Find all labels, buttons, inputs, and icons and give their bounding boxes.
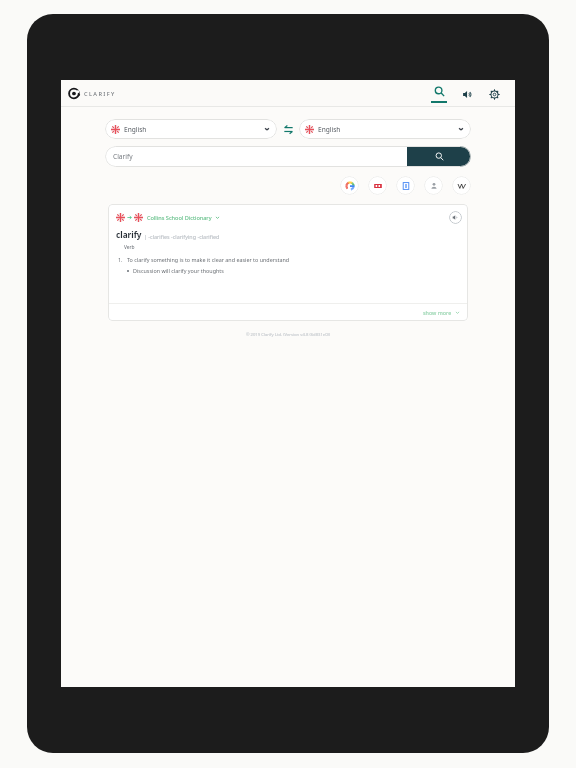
staticText: Verb	[124, 244, 135, 251]
staticText: 1.	[118, 256, 123, 263]
button[interactable]: Wikipedia	[452, 176, 471, 195]
button[interactable]: Collins dictionary	[368, 176, 387, 195]
button[interactable]: Google	[340, 176, 359, 195]
staticText: show more	[423, 309, 452, 316]
staticText: Discussion will clarify your thoughts	[133, 267, 224, 274]
staticText: CLARIFY	[84, 90, 116, 98]
button[interactable]: Sound	[456, 83, 478, 105]
staticText: English	[318, 125, 341, 134]
button[interactable]: Clarify	[105, 146, 407, 167]
button[interactable]: English	[299, 119, 471, 139]
staticText: To clarify something is to make it clear…	[127, 256, 290, 263]
staticText: clarify	[116, 229, 142, 240]
staticText: Collins School Dictionary	[147, 214, 212, 222]
staticText: | -clarifies -clarifying -clarified	[144, 233, 220, 240]
staticText: © 2019 Clarify Ltd. (Version v4.8 (6d831…	[61, 332, 515, 338]
button[interactable]: Images	[396, 176, 415, 195]
button[interactable]: Settings	[483, 83, 505, 105]
button[interactable]: show more	[415, 306, 468, 319]
button[interactable]: Pronounce	[449, 211, 462, 224]
button[interactable]: Swap languages	[277, 119, 299, 139]
button[interactable]: Search	[407, 146, 471, 167]
staticText: Clarify	[113, 152, 133, 161]
button[interactable]: English	[105, 119, 277, 139]
staticText: English	[124, 125, 147, 134]
button[interactable]: CLARIFY	[69, 88, 116, 99]
button[interactable]: Person	[424, 176, 443, 195]
button[interactable]: Collins School Dictionary	[116, 213, 220, 222]
button[interactable]: Search	[427, 80, 451, 107]
